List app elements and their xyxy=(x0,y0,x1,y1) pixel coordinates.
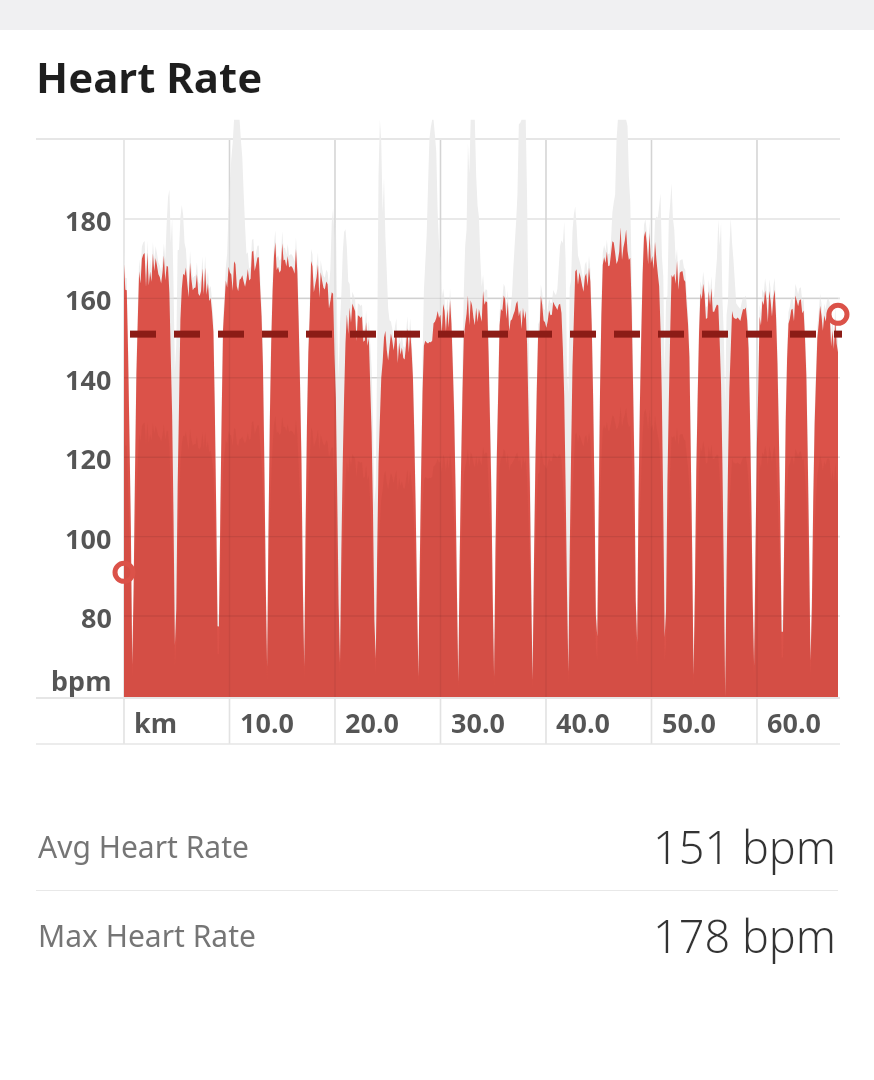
staticText: 120 xyxy=(65,440,112,477)
staticText: Heart Rate xyxy=(36,48,263,105)
staticText: Max Heart Rate xyxy=(38,915,256,956)
staticText: 50.0 xyxy=(662,704,716,741)
staticText: 160 xyxy=(65,281,112,318)
staticText: 20.0 xyxy=(345,704,399,741)
staticText: 40.0 xyxy=(556,704,610,741)
staticText: 151 bpm xyxy=(653,816,836,877)
staticText: bpm xyxy=(51,662,112,699)
staticText: 80 xyxy=(81,599,112,636)
staticText: 60.0 xyxy=(767,704,821,741)
other: Heart rate chart over distance xyxy=(0,122,874,760)
staticText: 10.0 xyxy=(240,704,294,741)
staticText: 178 bpm xyxy=(653,905,836,966)
staticText: 30.0 xyxy=(451,704,505,741)
staticText: 140 xyxy=(65,361,112,398)
button[interactable]: Avg Heart Rate xyxy=(0,802,874,890)
staticText: 180 xyxy=(65,202,112,239)
staticText: 100 xyxy=(65,520,112,557)
staticText: km xyxy=(134,704,178,741)
button[interactable]: Max Heart Rate xyxy=(0,891,874,979)
staticText: Avg Heart Rate xyxy=(38,826,249,867)
